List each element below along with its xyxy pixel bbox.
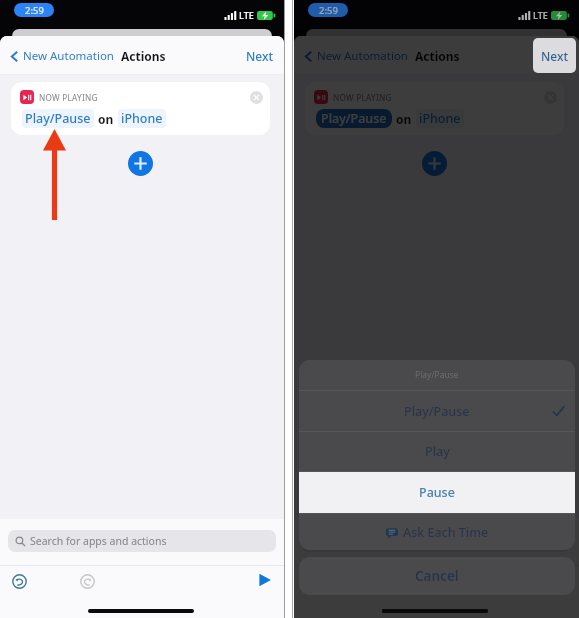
staticText: Play bbox=[425, 443, 450, 460]
staticText: New Automation bbox=[23, 48, 114, 64]
staticText: Search for apps and actions bbox=[30, 534, 167, 548]
staticText: Actions bbox=[121, 48, 166, 64]
button[interactable]: Remove action bbox=[250, 91, 263, 104]
staticText: 2:59 bbox=[319, 4, 338, 17]
staticText: Ask Each Time bbox=[403, 524, 489, 541]
staticText: iPhone bbox=[121, 110, 163, 127]
button[interactable]: New Automation bbox=[301, 48, 408, 64]
staticText: Actions bbox=[415, 48, 460, 64]
staticText: on bbox=[98, 111, 114, 127]
staticText: LTE bbox=[239, 9, 254, 21]
button[interactable]: Undo bbox=[12, 574, 27, 589]
staticText: Play/Pause bbox=[25, 110, 91, 127]
staticText: Pause bbox=[419, 484, 455, 501]
staticText: 2:59 bbox=[25, 4, 44, 17]
staticText: Play/Pause bbox=[404, 403, 470, 420]
button[interactable]: Next bbox=[533, 38, 576, 73]
button[interactable]: iPhone bbox=[419, 110, 461, 127]
staticText: Search for apps and actions bbox=[324, 534, 461, 548]
staticText: on bbox=[396, 111, 412, 127]
button[interactable]: Play/Pause bbox=[25, 110, 91, 127]
staticText: LTE bbox=[533, 9, 548, 21]
staticText: Next bbox=[541, 48, 569, 64]
button[interactable]: Remove action bbox=[544, 91, 557, 104]
staticText: Next bbox=[246, 48, 274, 64]
staticText: Play/Pause bbox=[321, 110, 387, 127]
staticText: NOW PLAYING bbox=[333, 92, 392, 103]
button[interactable]: Next bbox=[541, 48, 569, 64]
staticText: NOW PLAYING bbox=[39, 92, 98, 103]
button[interactable]: Pause bbox=[299, 472, 575, 513]
button[interactable]: Run bbox=[258, 573, 272, 587]
button[interactable]: Search for apps and actions bbox=[302, 530, 570, 552]
button[interactable]: Add action bbox=[128, 151, 153, 176]
button[interactable]: iPhone bbox=[121, 110, 163, 127]
button[interactable]: Play/Pause bbox=[299, 391, 575, 431]
button[interactable]: Add action bbox=[422, 151, 447, 176]
button[interactable]: Ask Each Time bbox=[299, 514, 575, 550]
button[interactable]: Search for apps and actions bbox=[8, 530, 276, 552]
staticText: New Automation bbox=[317, 48, 408, 64]
button[interactable]: Cancel bbox=[299, 557, 575, 595]
staticText: Play/Pause bbox=[415, 369, 459, 381]
button[interactable]: New Automation bbox=[7, 48, 114, 64]
button[interactable]: Redo bbox=[80, 574, 95, 589]
staticText: Cancel bbox=[415, 567, 459, 585]
button[interactable]: NOW PLAYING bbox=[11, 82, 270, 135]
staticText: iPhone bbox=[419, 110, 461, 127]
button[interactable]: Next bbox=[246, 48, 274, 64]
button[interactable]: NOW PLAYING bbox=[305, 82, 564, 135]
staticText: Next bbox=[541, 48, 569, 64]
button[interactable]: Play/Pause bbox=[321, 110, 387, 127]
